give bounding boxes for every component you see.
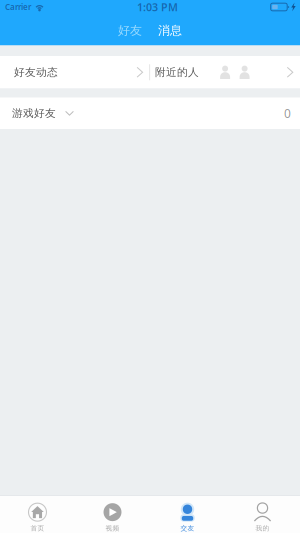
staticText: 首页 xyxy=(30,524,44,532)
staticText: 消息 xyxy=(158,23,182,38)
staticText: 0 xyxy=(284,105,291,121)
staticText: Carrier xyxy=(5,2,31,12)
staticText: 附近的人 xyxy=(155,66,199,79)
staticText: 交友 xyxy=(180,524,194,532)
button[interactable]: 首页 xyxy=(0,496,75,533)
button[interactable]: 消息 xyxy=(150,22,190,39)
button[interactable]: 好友 xyxy=(110,22,150,39)
button[interactable]: 附近的人 xyxy=(150,56,300,88)
button[interactable]: 视频 xyxy=(75,496,150,533)
staticText: 视频 xyxy=(105,524,119,532)
staticText: 游戏好友 xyxy=(12,107,56,120)
staticText: 1:03 PM xyxy=(137,0,178,14)
button[interactable]: 交友 xyxy=(150,496,225,533)
button[interactable]: 游戏好友 xyxy=(0,97,300,129)
staticText: 我的 xyxy=(255,524,269,532)
button[interactable]: 我的 xyxy=(225,496,300,533)
button[interactable]: 好友动态 xyxy=(0,56,149,88)
staticText: 好友 xyxy=(118,23,142,38)
staticText: 好友动态 xyxy=(14,66,58,79)
